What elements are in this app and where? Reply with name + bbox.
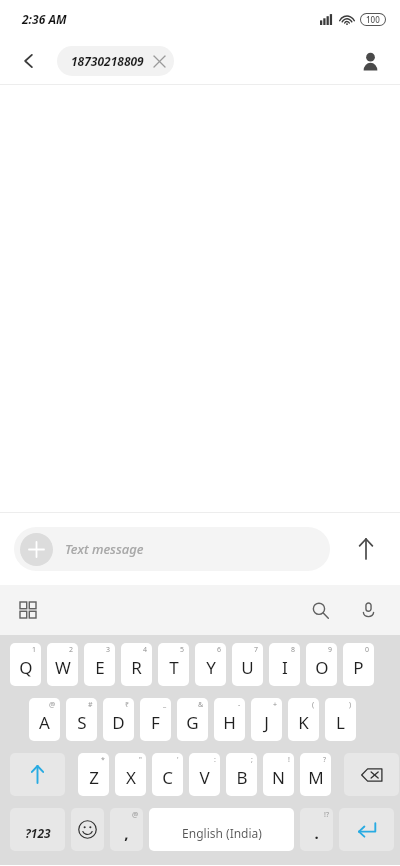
button[interactable]: Contact details: [352, 43, 388, 79]
staticText: G: [186, 711, 199, 734]
button[interactable]: English (India): [149, 808, 294, 851]
staticText: ?: [323, 755, 327, 765]
button[interactable]: 18730218809: [57, 46, 174, 76]
staticText: R: [131, 656, 142, 679]
button[interactable]: *: [78, 753, 109, 796]
button[interactable]: !?: [300, 808, 333, 851]
staticText: S: [77, 711, 87, 734]
button[interactable]: Emoji: [71, 808, 104, 851]
button[interactable]: #: [66, 698, 97, 741]
staticText: 6: [217, 645, 222, 655]
staticText: M: [308, 766, 324, 789]
button[interactable]: 8: [269, 643, 300, 686]
staticText: ): [349, 700, 352, 710]
button[interactable]: :: [189, 753, 220, 796]
staticText: A: [39, 711, 50, 734]
button[interactable]: 5: [158, 643, 189, 686]
button[interactable]: Enter: [339, 808, 394, 851]
button[interactable]: ): [325, 698, 356, 741]
staticText: ": [139, 755, 142, 765]
staticText: X: [126, 766, 136, 789]
staticText: ?123: [25, 825, 51, 841]
staticText: 2: [69, 645, 74, 655]
staticText: K: [298, 711, 309, 734]
staticText: :: [214, 755, 216, 765]
staticText: 1: [32, 645, 37, 655]
staticText: 8: [291, 645, 296, 655]
button[interactable]: 6: [195, 643, 226, 686]
button[interactable]: 3: [84, 643, 115, 686]
button[interactable]: _: [140, 698, 171, 741]
staticText: ₹: [125, 700, 130, 710]
button[interactable]: +: [251, 698, 282, 741]
staticText: Q: [19, 656, 33, 679]
staticText: -: [238, 700, 241, 710]
staticText: (: [312, 700, 315, 710]
staticText: H: [223, 711, 236, 734]
staticText: O: [315, 656, 329, 679]
staticText: _: [163, 700, 167, 710]
staticText: English (India): [182, 825, 262, 841]
staticText: 9: [328, 645, 333, 655]
staticText: @: [49, 700, 56, 710]
button[interactable]: 9: [306, 643, 337, 686]
button[interactable]: @: [110, 808, 143, 851]
button[interactable]: ;: [226, 753, 257, 796]
button[interactable]: ?123: [10, 808, 65, 851]
button[interactable]: -: [214, 698, 245, 741]
staticText: L: [336, 711, 345, 734]
staticText: *: [101, 755, 105, 765]
button[interactable]: Voice input: [350, 592, 386, 628]
staticText: F: [151, 711, 160, 734]
button[interactable]: 1: [10, 643, 41, 686]
staticText: 7: [254, 645, 259, 655]
staticText: B: [236, 766, 248, 789]
staticText: ;: [251, 755, 253, 765]
staticText: &: [198, 700, 204, 710]
staticText: W: [55, 656, 71, 679]
button[interactable]: ?: [300, 753, 331, 796]
button[interactable]: Add attachment: [14, 527, 330, 571]
staticText: Z: [89, 766, 99, 789]
staticText: E: [95, 656, 105, 679]
staticText: N: [272, 766, 285, 789]
staticText: 0: [365, 645, 370, 655]
staticText: #: [88, 700, 93, 710]
button[interactable]: (: [288, 698, 319, 741]
staticText: @: [132, 810, 139, 820]
button[interactable]: Shift: [10, 753, 65, 796]
staticText: J: [264, 711, 269, 734]
staticText: +: [273, 700, 278, 710]
staticText: 100: [366, 14, 380, 25]
staticText: ': [177, 755, 179, 765]
button[interactable]: !: [263, 753, 294, 796]
button[interactable]: Add attachment: [20, 533, 53, 566]
staticText: 3: [106, 645, 111, 655]
staticText: I: [282, 656, 288, 679]
staticText: T: [169, 656, 179, 679]
staticText: D: [112, 711, 125, 734]
button[interactable]: Send: [346, 529, 386, 569]
staticText: !?: [324, 810, 329, 820]
staticText: C: [162, 766, 173, 789]
button[interactable]: 0: [343, 643, 374, 686]
staticText: V: [199, 766, 210, 789]
button[interactable]: 7: [232, 643, 263, 686]
staticText: P: [353, 656, 364, 679]
button[interactable]: 2: [47, 643, 78, 686]
button[interactable]: Search: [302, 592, 338, 628]
button[interactable]: &: [177, 698, 208, 741]
staticText: Y: [206, 656, 216, 679]
staticText: 5: [180, 645, 185, 655]
staticText: 4: [143, 645, 148, 655]
button[interactable]: ': [152, 753, 183, 796]
button[interactable]: 4: [121, 643, 152, 686]
button[interactable]: Keyboard menu: [10, 592, 46, 628]
button[interactable]: ": [115, 753, 146, 796]
button[interactable]: ₹: [103, 698, 134, 741]
button[interactable]: @: [29, 698, 60, 741]
button[interactable]: Backspace: [344, 753, 399, 796]
button[interactable]: Back: [12, 44, 46, 78]
staticText: .: [314, 823, 319, 843]
staticText: Text message: [65, 540, 144, 558]
